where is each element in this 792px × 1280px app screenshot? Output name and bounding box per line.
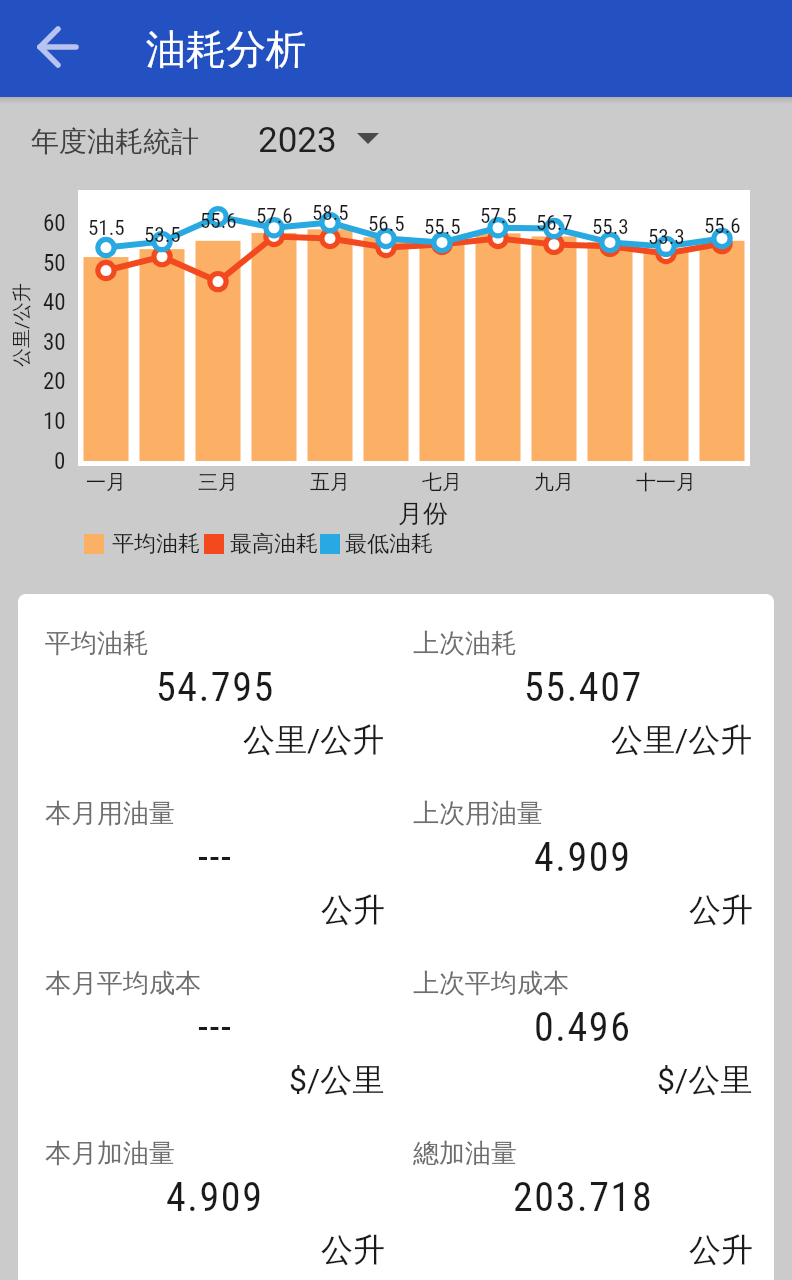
staticText: 七月 — [422, 470, 462, 495]
staticText: 54.795 — [156, 664, 275, 711]
staticText: 五月 — [310, 470, 350, 495]
staticText: 57.5 — [480, 204, 517, 229]
staticText: 20 — [43, 368, 66, 395]
staticText: 最低油耗 — [345, 530, 433, 558]
staticText: 56.7 — [536, 211, 573, 236]
staticText: --- — [198, 834, 233, 881]
staticText: --- — [198, 1004, 233, 1051]
staticText: 平均油耗 — [45, 627, 149, 660]
staticText: 40 — [43, 289, 66, 316]
staticText: 公里/公升 — [611, 720, 753, 760]
button[interactable]: 2023 — [258, 112, 358, 168]
staticText: $/公里 — [289, 1060, 385, 1100]
staticText: 平均油耗 — [112, 530, 200, 558]
staticText: 十一月 — [636, 470, 696, 495]
staticText: 51.5 — [88, 216, 125, 241]
staticText: 公升 — [321, 890, 385, 930]
staticText: 50 — [43, 250, 66, 277]
staticText: 本月平均成本 — [45, 967, 201, 1000]
staticText: 58.5 — [312, 201, 349, 226]
staticText: 203.718 — [513, 1174, 654, 1221]
staticText: 55.3 — [592, 215, 629, 240]
staticText: 本月加油量 — [45, 1137, 175, 1170]
staticText: 10 — [43, 408, 66, 435]
staticText: 公里/公升 — [10, 283, 34, 367]
staticText: 最高油耗 — [230, 530, 318, 558]
staticText: 4.909 — [534, 834, 632, 881]
staticText: 本月用油量 — [45, 797, 175, 830]
staticText: 55.5 — [424, 215, 461, 240]
staticText: 年度油耗統計 — [31, 124, 199, 159]
staticText: 一月 — [86, 470, 126, 495]
staticText: 53.3 — [648, 225, 685, 250]
staticText: 三月 — [198, 470, 238, 495]
staticText: 上次平均成本 — [413, 967, 569, 1000]
staticText: 上次用油量 — [413, 797, 543, 830]
staticText: 總加油量 — [413, 1137, 517, 1170]
staticText: 4.909 — [166, 1174, 264, 1221]
staticText: 30 — [43, 329, 66, 356]
staticText: 公升 — [321, 1230, 385, 1270]
staticText: 月份 — [398, 498, 448, 529]
staticText: 油耗分析 — [146, 24, 306, 74]
staticText: 九月 — [534, 470, 574, 495]
button[interactable] — [20, 25, 76, 71]
staticText: $/公里 — [657, 1060, 753, 1100]
staticText: 公升 — [689, 1230, 753, 1270]
staticText: 2023 — [258, 120, 337, 161]
staticText: 56.5 — [368, 212, 405, 237]
staticText: 60 — [43, 210, 66, 237]
staticText: 55.6 — [200, 209, 237, 234]
staticText: 0 — [54, 448, 66, 475]
staticText: 55.407 — [524, 664, 643, 711]
staticText: 公里/公升 — [243, 720, 385, 760]
staticText: 55.6 — [704, 214, 741, 239]
staticText: 57.6 — [256, 204, 293, 229]
staticText: 公升 — [689, 890, 753, 930]
staticText: 上次油耗 — [413, 627, 517, 660]
staticText: 53.5 — [144, 223, 181, 248]
staticText: 0.496 — [534, 1004, 632, 1051]
